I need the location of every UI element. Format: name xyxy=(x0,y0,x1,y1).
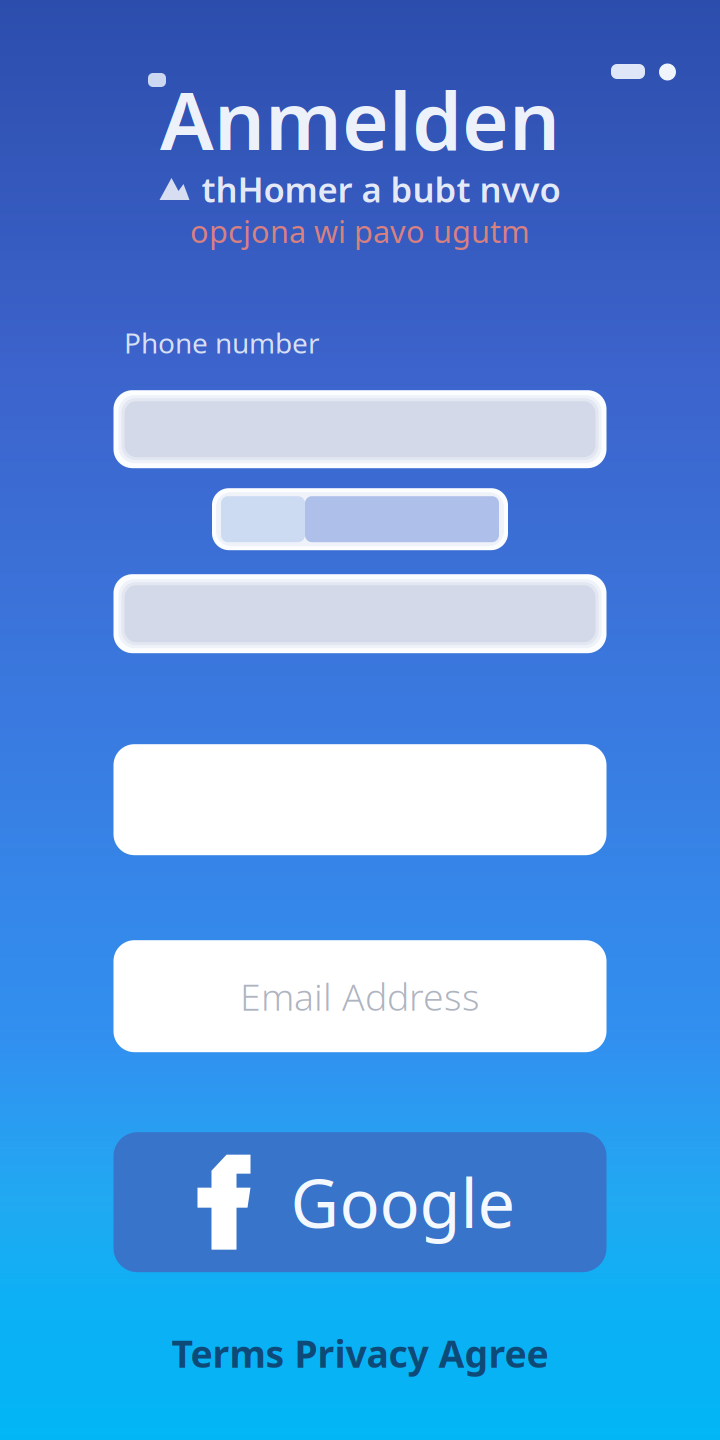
button[interactable]: Terms Privacy Agree xyxy=(0,1328,720,1378)
staticText: Anmelden xyxy=(160,66,560,172)
staticText: opcjona wi pavo ugutm xyxy=(190,211,530,251)
staticText: Phone number xyxy=(124,324,320,361)
staticText: Email Address xyxy=(240,971,480,1021)
button[interactable]: Email Address xyxy=(113,940,606,1052)
button[interactable]: Continue xyxy=(113,744,606,855)
staticText: Google xyxy=(290,1158,515,1246)
staticText: thHomer a bubt nvvo xyxy=(201,166,560,212)
staticText: Terms Privacy Agree xyxy=(171,1328,548,1378)
button[interactable]: Google xyxy=(113,1132,606,1272)
